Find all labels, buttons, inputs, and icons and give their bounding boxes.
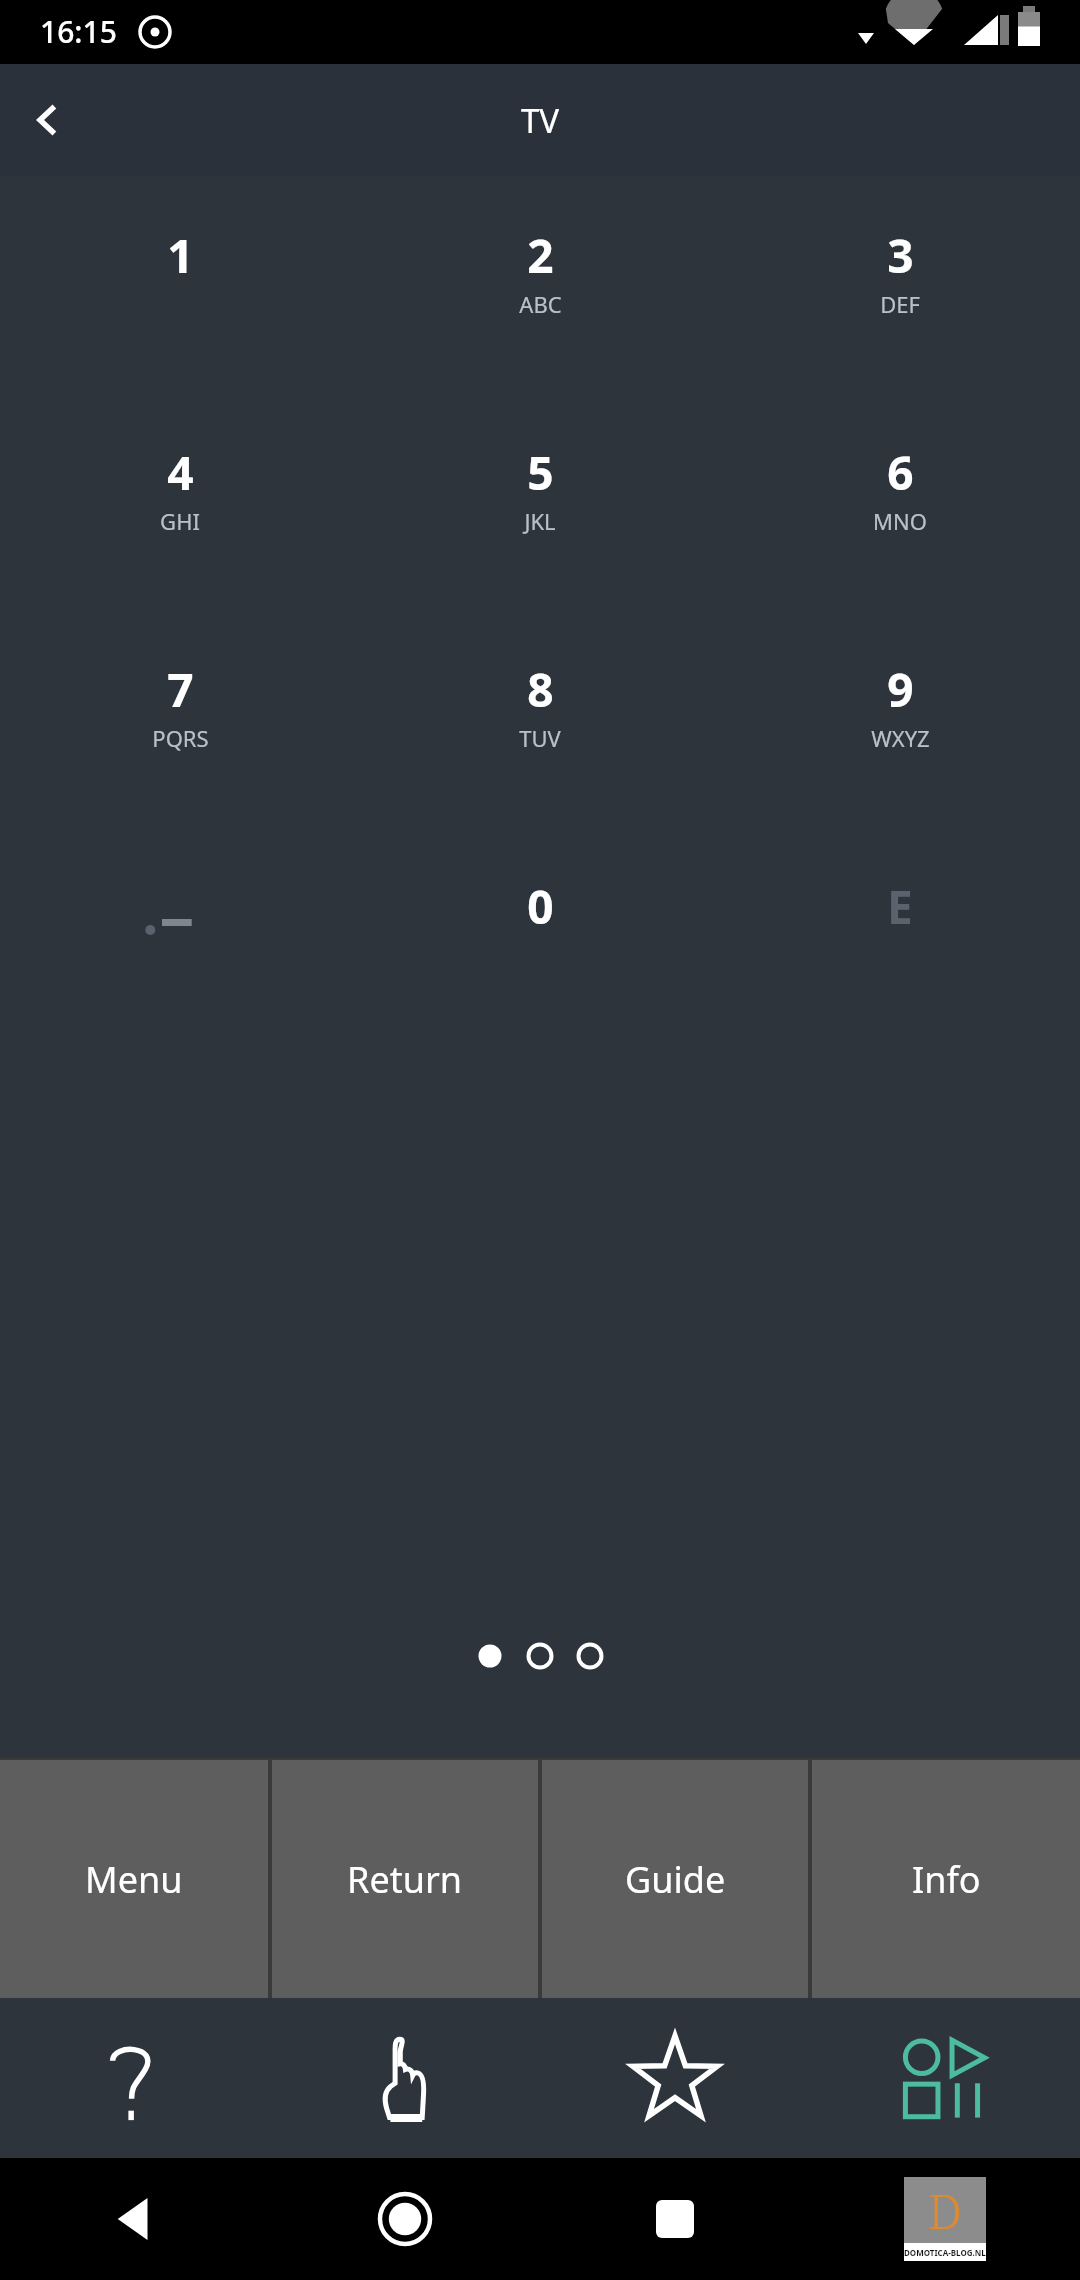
button[interactable]: 1 — [0, 202, 360, 419]
button[interactable]: 0 — [360, 853, 720, 1070]
button[interactable]: Back — [0, 2158, 270, 2280]
staticText: ABC — [519, 289, 562, 319]
button[interactable]: 6 — [720, 419, 1080, 636]
button[interactable]: Return — [272, 1760, 538, 1998]
button[interactable]: 2 — [360, 202, 720, 419]
button[interactable]: Page 3 — [565, 1636, 615, 1676]
button[interactable]: E — [720, 853, 1080, 1070]
button[interactable]: Favorites — [540, 1998, 810, 2158]
staticText: GHI — [160, 506, 200, 536]
button[interactable]: 4 — [0, 419, 360, 636]
staticText: 7 — [167, 658, 194, 721]
button[interactable]: Recent apps — [540, 2158, 810, 2280]
staticText: 8 — [527, 658, 554, 721]
staticText: E — [887, 875, 913, 938]
button[interactable]: Guide — [542, 1760, 808, 1998]
button[interactable] — [0, 853, 360, 1070]
button[interactable]: Touchpad — [270, 1998, 540, 2158]
staticText: JKL — [524, 506, 556, 536]
staticText: D — [928, 2178, 962, 2243]
staticText: DOMOTICA-BLOG.NL — [904, 2247, 986, 2258]
button[interactable]: Menu — [0, 1760, 268, 1998]
button[interactable]: Back — [0, 72, 96, 168]
staticText: TV — [521, 98, 560, 143]
staticText: 16:15 — [40, 11, 117, 52]
button[interactable]: Page 2 — [515, 1636, 565, 1676]
button[interactable]: Page 1 — [465, 1636, 515, 1676]
staticText: DEF — [880, 289, 920, 319]
button[interactable]: 8 — [360, 636, 720, 853]
staticText: 6 — [887, 441, 914, 504]
staticText: WXYZ — [871, 723, 930, 753]
button[interactable]: Info — [812, 1760, 1080, 1998]
button[interactable]: Home — [270, 2158, 540, 2280]
staticText: MNO — [873, 506, 927, 536]
button[interactable]: Help — [0, 1998, 270, 2158]
button[interactable]: Shapes — [810, 1998, 1080, 2158]
button[interactable]: 5 — [360, 419, 720, 636]
staticText: 2 — [527, 224, 554, 287]
staticText: Return — [347, 1855, 463, 1904]
staticText: 3 — [887, 224, 914, 287]
staticText: Info — [912, 1855, 981, 1904]
staticText: PQRS — [152, 723, 209, 753]
staticText: 9 — [887, 658, 914, 721]
staticText: 5 — [527, 441, 554, 504]
button[interactable]: 9 — [720, 636, 1080, 853]
staticText: 4 — [167, 441, 194, 504]
button[interactable]: 3 — [720, 202, 1080, 419]
button[interactable]: 7 — [0, 636, 360, 853]
staticText: 1 — [167, 224, 194, 287]
staticText: 0 — [527, 875, 554, 938]
staticText: Guide — [625, 1855, 726, 1904]
staticText: TUV — [519, 723, 561, 753]
staticText: Menu — [85, 1855, 183, 1904]
